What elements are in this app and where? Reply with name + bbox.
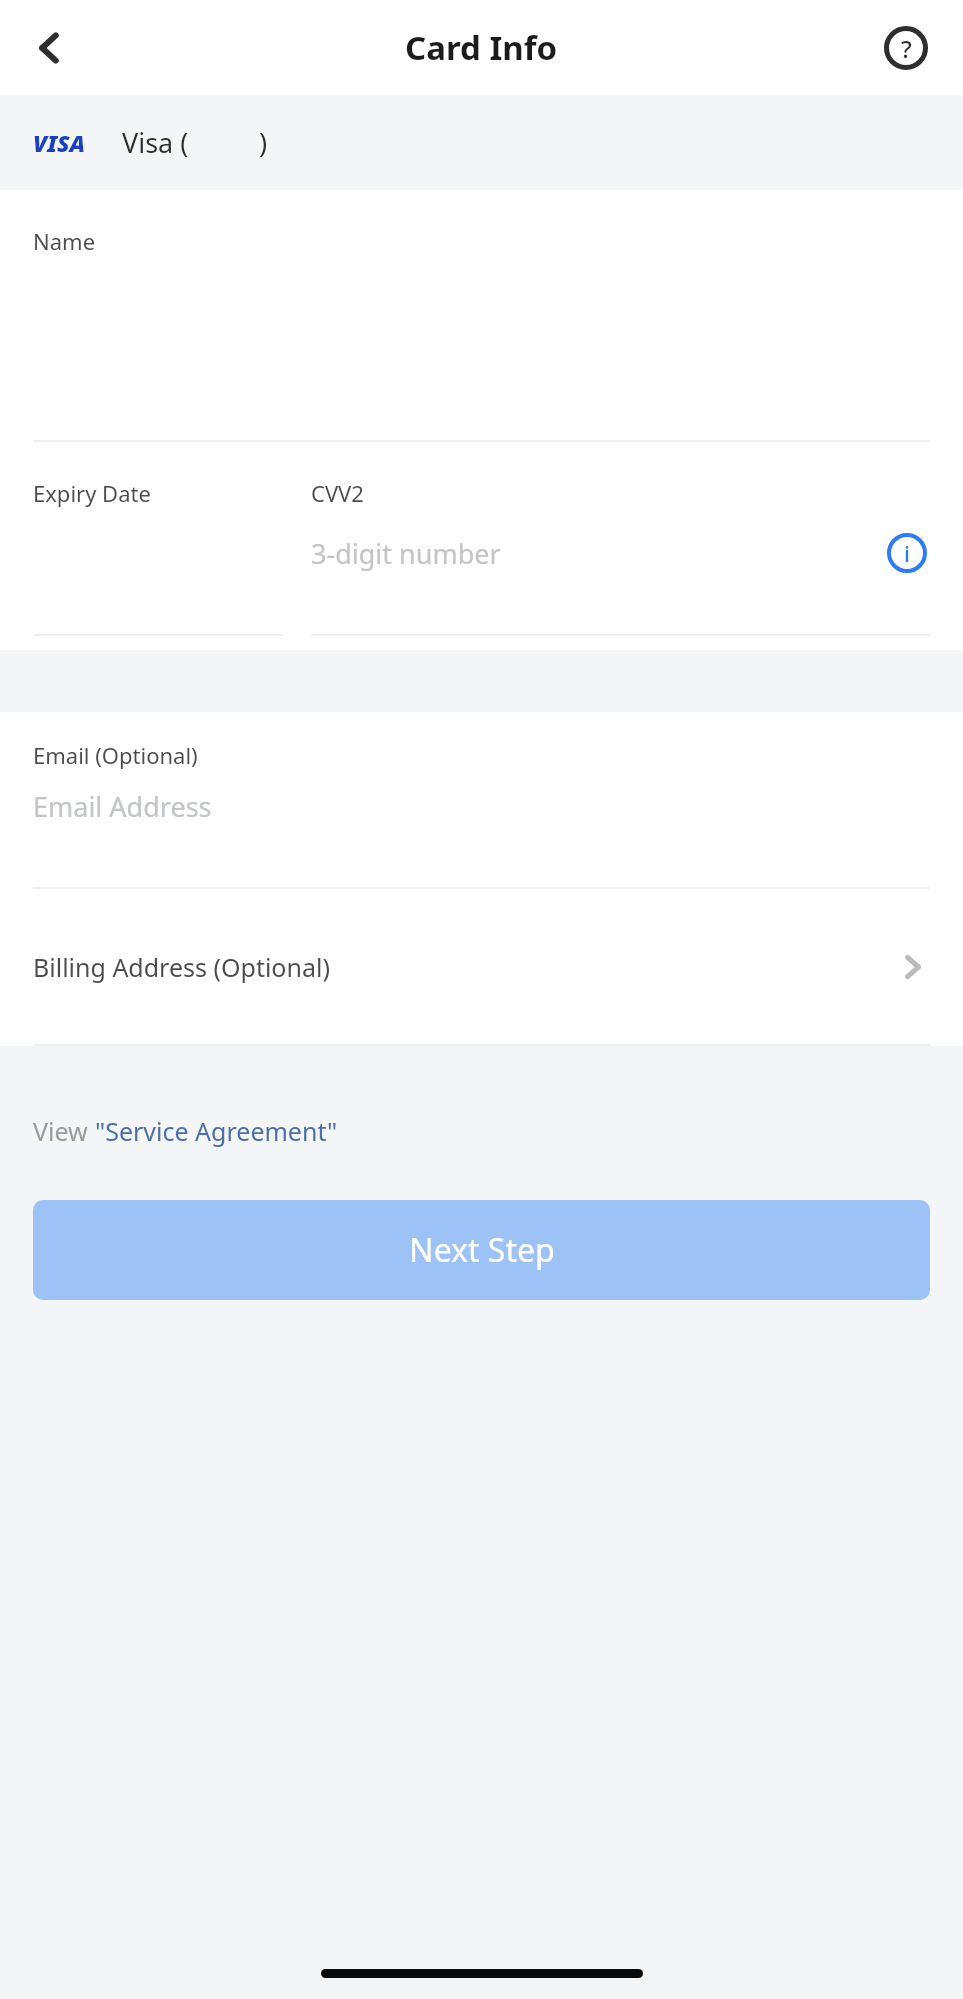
staticText: Expiry Date bbox=[33, 478, 151, 508]
staticText: ? bbox=[901, 32, 912, 65]
staticText: Name bbox=[33, 226, 96, 256]
button[interactable]: Email (Optional) bbox=[0, 712, 963, 887]
staticText: Email Address bbox=[33, 788, 212, 825]
staticText: "Service Agreement" bbox=[95, 1114, 338, 1148]
button[interactable]: Next Step bbox=[33, 1200, 930, 1300]
staticText: i bbox=[904, 538, 910, 568]
staticText: Billing Address (Optional) bbox=[33, 950, 896, 984]
staticText: Next Step bbox=[409, 1228, 555, 1272]
button[interactable]: Back bbox=[14, 13, 84, 83]
staticText: VISA bbox=[33, 127, 86, 158]
staticText: Visa ( bbox=[122, 124, 189, 161]
button[interactable]: VISA bbox=[0, 95, 963, 190]
staticText: ) bbox=[259, 124, 268, 161]
staticText: View bbox=[33, 1114, 95, 1148]
button[interactable]: Expiry Date bbox=[33, 442, 283, 634]
staticText: CVV2 bbox=[311, 478, 364, 508]
button[interactable]: Billing Address (Optional) bbox=[0, 889, 963, 1044]
staticText: Card Info bbox=[405, 25, 558, 70]
button[interactable]: CVV2 information bbox=[884, 530, 930, 576]
button[interactable]: View bbox=[33, 1114, 338, 1148]
button[interactable]: CVV2 bbox=[311, 442, 930, 634]
staticText: Email (Optional) bbox=[33, 740, 198, 770]
button[interactable]: Name bbox=[0, 190, 963, 440]
staticText: 3-digit number bbox=[311, 535, 884, 572]
button[interactable]: Help bbox=[877, 19, 935, 77]
